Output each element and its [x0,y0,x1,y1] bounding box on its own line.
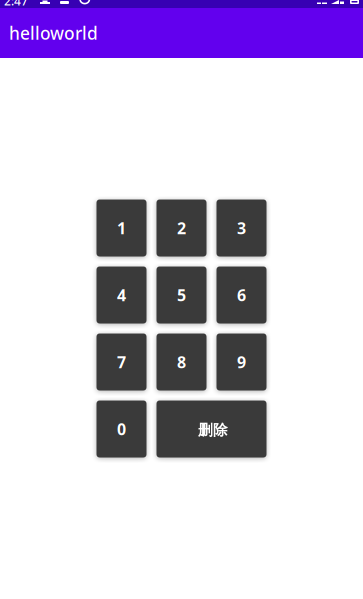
button[interactable]: 8 [156,333,206,390]
button[interactable]: 9 [216,333,266,390]
button[interactable]: 0 [96,400,146,457]
staticText: 4 [117,284,126,306]
button[interactable]: 6 [216,266,266,323]
staticText: 5 [177,284,186,306]
staticText: 6 [237,284,246,306]
button[interactable]: 1 [96,199,146,256]
staticText: helloworld [9,21,98,44]
staticText: 2 [177,217,186,239]
staticText: 0 [117,418,126,440]
staticText: 7 [117,351,126,373]
button[interactable]: 7 [96,333,146,390]
button[interactable]: 2 [156,199,206,256]
button[interactable]: 3 [216,199,266,256]
staticText: 3 [237,217,246,239]
staticText: 删除 [198,421,228,439]
button[interactable]: 删除 [156,400,266,457]
staticText: 2:47 [4,0,28,9]
button[interactable]: 5 [156,266,206,323]
staticText: 9 [237,351,246,373]
button[interactable]: 4 [96,266,146,323]
staticText: 8 [177,351,186,373]
staticText: 1 [117,217,126,239]
